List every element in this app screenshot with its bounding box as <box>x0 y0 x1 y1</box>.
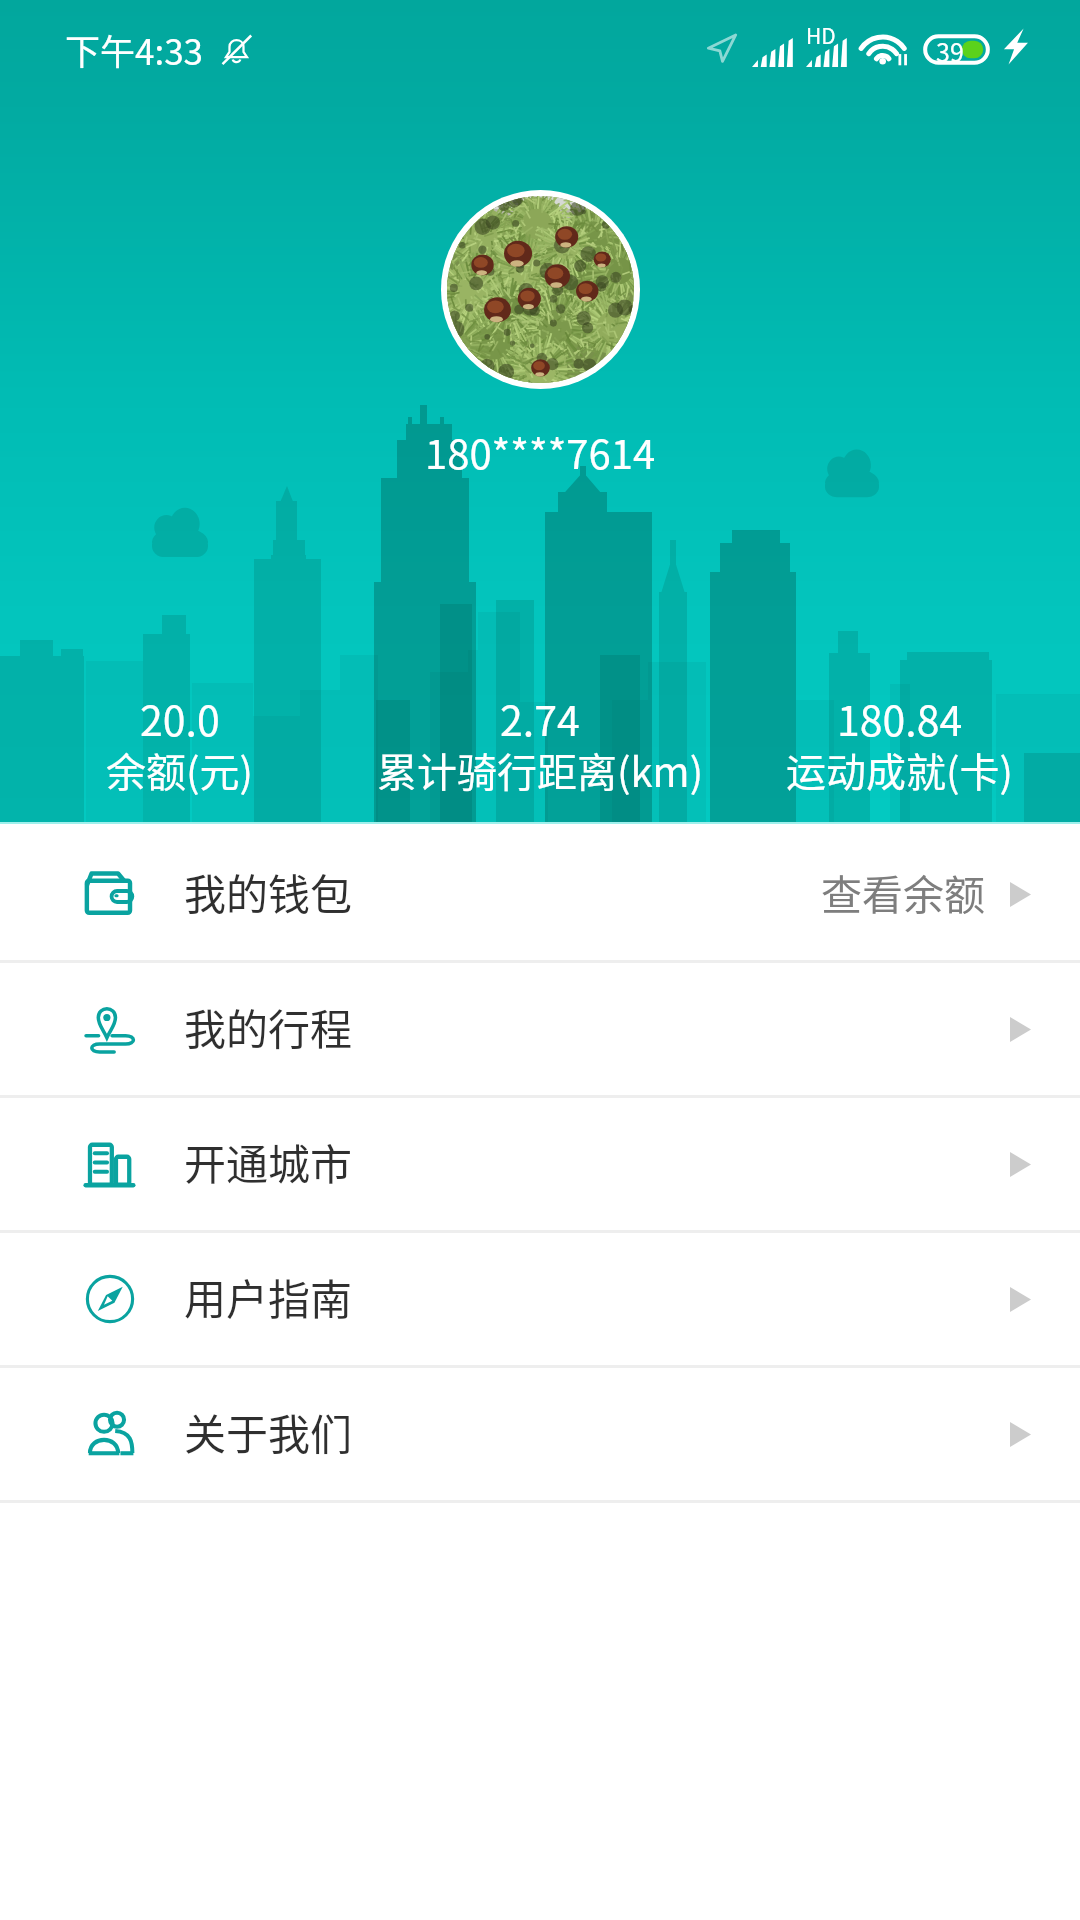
staticText: 20.0 <box>140 688 220 747</box>
staticText: 2.74 <box>500 688 580 747</box>
staticText: 查看余额 <box>821 862 985 921</box>
staticText: 关于我们 <box>184 1401 353 1462</box>
button[interactable]: 用户指南 <box>0 1233 1080 1365</box>
button[interactable]: 开通城市 <box>0 1098 1080 1230</box>
staticText: 180.84 <box>837 688 963 747</box>
staticText: 我的钱包 <box>184 861 353 922</box>
button[interactable]: 我的钱包 <box>0 828 1080 960</box>
staticText: 开通城市 <box>184 1131 353 1192</box>
staticText: 累计骑行距离(km) <box>377 741 704 799</box>
staticText: 下午4:33 <box>65 24 204 75</box>
staticText: 180****7614 <box>425 423 656 481</box>
staticText: 用户指南 <box>184 1266 353 1327</box>
button[interactable]: 关于我们 <box>0 1368 1080 1500</box>
staticText: 余额(元) <box>106 741 254 799</box>
staticText: 39 <box>936 33 964 64</box>
staticText: HD <box>806 20 836 50</box>
button[interactable]: Profile photo <box>441 190 640 389</box>
staticText: 我的行程 <box>184 996 353 1057</box>
staticText: 运动成就(卡) <box>786 741 1014 799</box>
button[interactable]: 我的行程 <box>0 963 1080 1095</box>
